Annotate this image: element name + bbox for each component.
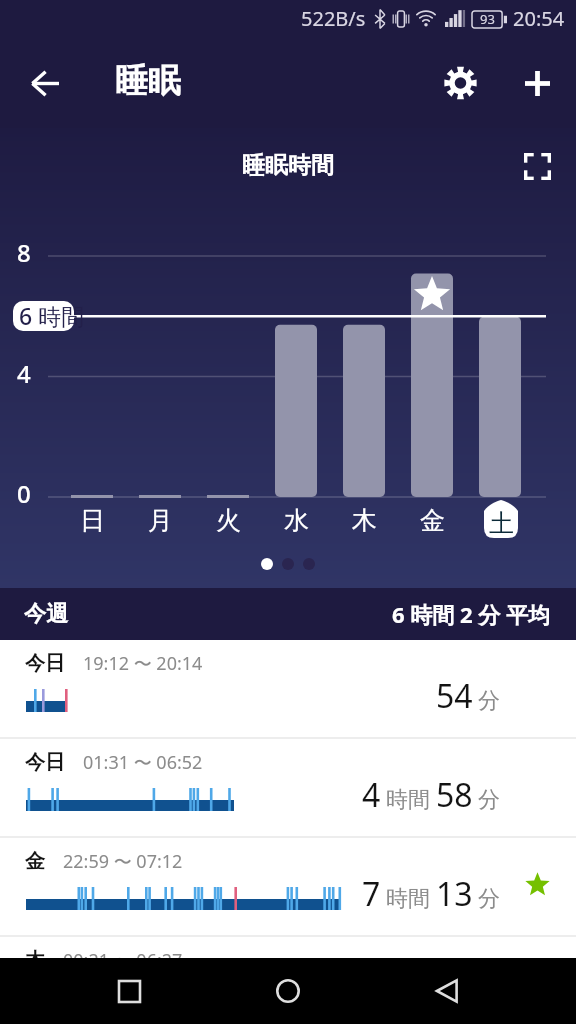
staticText: 分 <box>478 786 500 814</box>
button[interactable]: 木 <box>0 937 576 958</box>
staticText: 93 <box>480 10 495 28</box>
button[interactable]: Fullscreen <box>513 142 561 190</box>
staticText: 19:12 〜 20:14 <box>83 651 203 676</box>
button[interactable]: Add <box>513 59 561 107</box>
button[interactable]: Recents <box>99 961 159 1021</box>
staticText: 58 <box>436 773 473 817</box>
staticText: 4 <box>362 773 381 817</box>
staticText: 睡眠 <box>115 60 181 102</box>
staticText: 睡眠時間 <box>242 151 334 180</box>
staticText: 時間 <box>386 885 430 913</box>
button[interactable]: 金 <box>0 838 576 935</box>
staticText: 522B/s <box>301 5 366 32</box>
staticText: 13 <box>436 872 473 916</box>
staticText: 月 <box>148 505 173 536</box>
staticText: 時間 <box>386 786 430 814</box>
button[interactable]: Back <box>417 961 477 1021</box>
staticText: 今日 <box>25 750 65 775</box>
staticText: 火 <box>216 505 241 536</box>
button[interactable]: Back <box>21 59 69 107</box>
button[interactable]: Home <box>258 961 318 1021</box>
staticText: 金 <box>25 849 45 874</box>
staticText: 金 <box>420 505 445 536</box>
staticText: 4 <box>17 357 31 390</box>
staticText: 今日 <box>25 651 65 676</box>
staticText: 6 時間 2 分 平均 <box>392 599 551 629</box>
staticText: 6 時間 <box>19 300 85 331</box>
staticText: 8 <box>17 236 31 269</box>
button[interactable]: Settings <box>436 59 484 107</box>
staticText: 22:59 〜 07:12 <box>63 849 183 874</box>
button[interactable]: 今週 <box>0 588 576 640</box>
button[interactable]: 今日 <box>0 640 576 737</box>
staticText: 土 <box>489 508 514 539</box>
staticText: 20:54 <box>513 5 565 32</box>
staticText: 今週 <box>24 600 68 628</box>
staticText: 木 <box>352 505 377 536</box>
staticText: 7 <box>362 872 381 916</box>
staticText: 日 <box>80 505 105 536</box>
staticText: 54 <box>436 674 473 718</box>
staticText: 0 <box>17 477 31 510</box>
button[interactable]: 今日 <box>0 739 576 836</box>
staticText: 分 <box>478 885 500 913</box>
staticText: 木 <box>25 948 45 969</box>
staticText: 01:31 〜 06:52 <box>83 750 203 775</box>
staticText: 分 <box>478 687 500 715</box>
staticText: 水 <box>284 505 309 536</box>
staticText: 00:21 〜 06:27 <box>63 948 183 969</box>
